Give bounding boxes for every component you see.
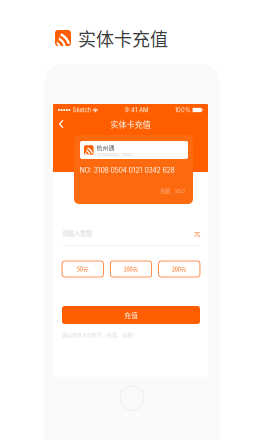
staticText: 请输入金额 (62, 228, 92, 238)
button[interactable]: 50元 (62, 261, 103, 277)
staticText: 元 (194, 228, 200, 238)
staticText: 实体卡充值 (110, 118, 150, 130)
button[interactable]: 200元 (159, 261, 200, 277)
staticText: 200元 (172, 265, 187, 273)
staticText: 100% (175, 106, 191, 114)
staticText: NO: 3108 0504 0121 0342 628 (79, 166, 174, 174)
button[interactable]: 充值 (62, 306, 200, 324)
staticText: 确认实体卡的账号（充值、消费） (62, 331, 137, 338)
staticText: 余额：¥0.0 (160, 187, 185, 194)
button[interactable]: Back (53, 115, 69, 133)
button[interactable]: 100元 (110, 261, 152, 277)
staticText: 充值 (124, 310, 138, 320)
staticText: 50元 (77, 265, 89, 273)
staticText: HANGZHOU TONG (96, 152, 132, 157)
staticText: 100元 (123, 265, 138, 273)
staticText: 杭州通 (96, 143, 114, 152)
staticText: 实体卡充值 (78, 25, 168, 51)
staticText: Sketch (72, 106, 90, 114)
staticText: 9:41 AM (125, 106, 149, 114)
